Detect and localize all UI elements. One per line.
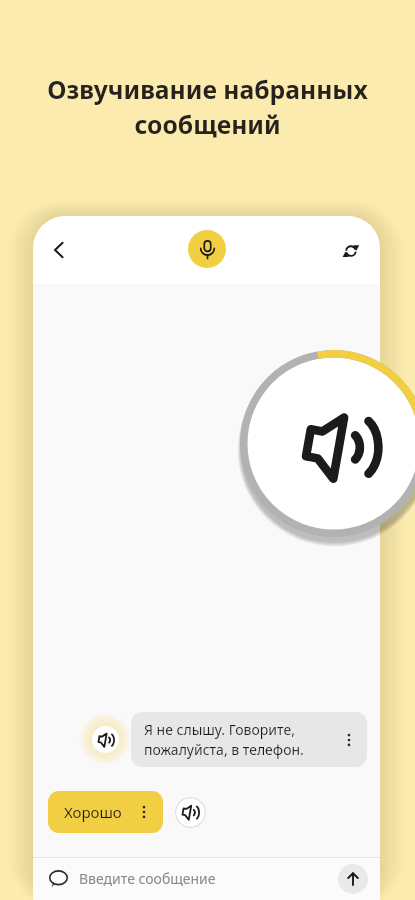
button[interactable]: Back [39, 230, 79, 270]
staticText: Введите сообщение [79, 869, 338, 888]
staticText: Я не слышу. Говорите, пожалуйста, в теле… [144, 720, 337, 759]
button[interactable]: Хорошо [48, 791, 163, 833]
button[interactable]: Я не слышу. Говорите, пожалуйста, в теле… [131, 712, 367, 767]
button[interactable]: Send [338, 864, 368, 894]
button[interactable]: Speak [175, 797, 206, 828]
staticText: Хорошо [64, 802, 122, 822]
button[interactable]: Refresh [331, 230, 371, 270]
button[interactable]: Play message [79, 713, 131, 765]
staticText: Озвучивание набранных сообщений [0, 73, 415, 141]
button[interactable]: Microphone [188, 230, 226, 268]
